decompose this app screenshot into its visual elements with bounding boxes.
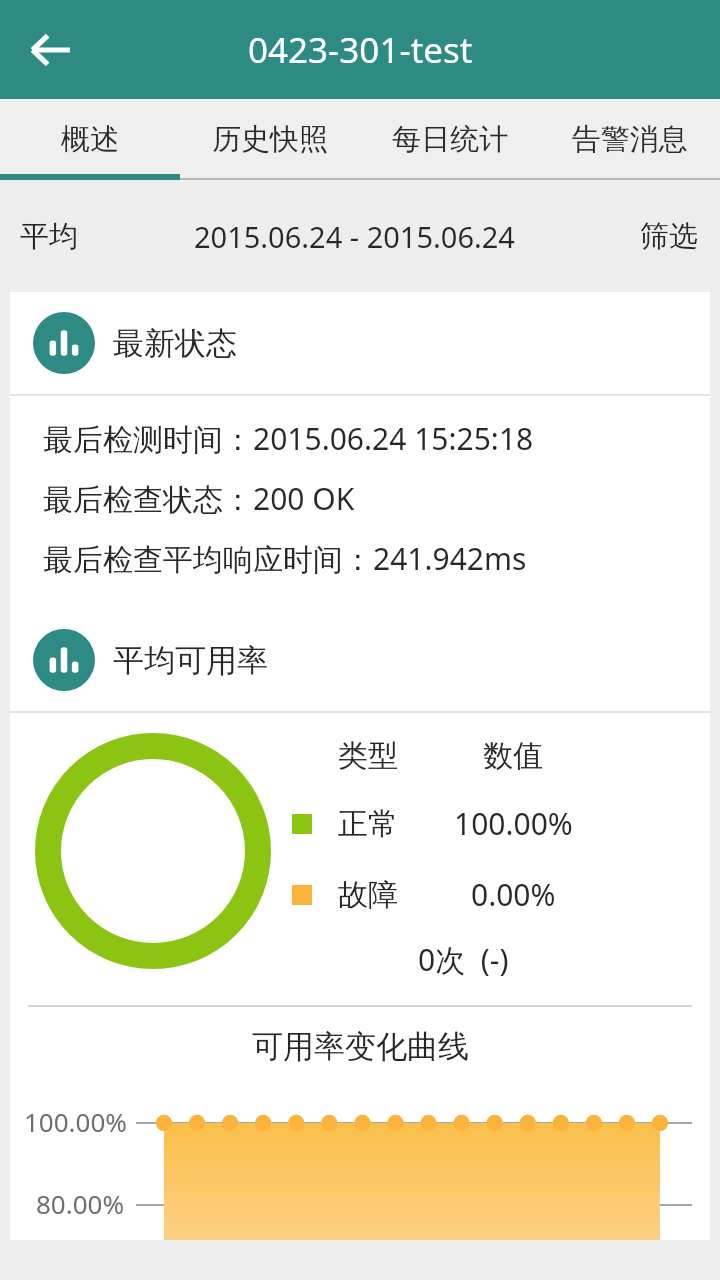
staticText: 最新状态	[113, 324, 237, 363]
staticText: 可用率变化曲线	[252, 1027, 469, 1066]
button[interactable]: 2015.06.24 - 2015.06.24	[194, 217, 515, 256]
staticText: 类型	[338, 737, 398, 775]
staticText: 100.00%	[24, 1104, 127, 1139]
button[interactable]: 概述	[0, 99, 180, 180]
button[interactable]: 告警消息	[540, 99, 720, 180]
button[interactable]: 平均可用率	[10, 609, 710, 711]
button[interactable]: Back	[18, 17, 84, 83]
staticText: 最后检查平均响应时间：241.942ms	[43, 538, 527, 579]
staticText: 概述	[61, 121, 119, 158]
button[interactable]: 每日统计	[360, 99, 540, 180]
staticText: 0423-301-test	[248, 26, 473, 74]
staticText: 0次 (-)	[418, 939, 509, 980]
staticText: 80.00%	[36, 1186, 125, 1221]
staticText: 最后检测时间：2015.06.24 15:25:18	[43, 418, 534, 459]
staticText: 每日统计	[392, 121, 508, 158]
staticText: 100.00%	[454, 803, 573, 844]
staticText: 0.00%	[471, 874, 556, 915]
button[interactable]: 最新状态	[10, 292, 710, 394]
staticText: 故障	[338, 876, 398, 914]
staticText: 历史快照	[212, 121, 328, 158]
staticText: 平均可用率	[113, 641, 268, 680]
staticText: 数值	[483, 737, 543, 775]
button[interactable]: 平均	[20, 218, 78, 255]
staticText: 最后检查状态：200 OK	[43, 478, 355, 519]
staticText: 告警消息	[572, 121, 688, 158]
button[interactable]: 筛选	[640, 218, 698, 255]
button[interactable]: 历史快照	[180, 99, 360, 180]
staticText: 正常	[338, 805, 398, 843]
